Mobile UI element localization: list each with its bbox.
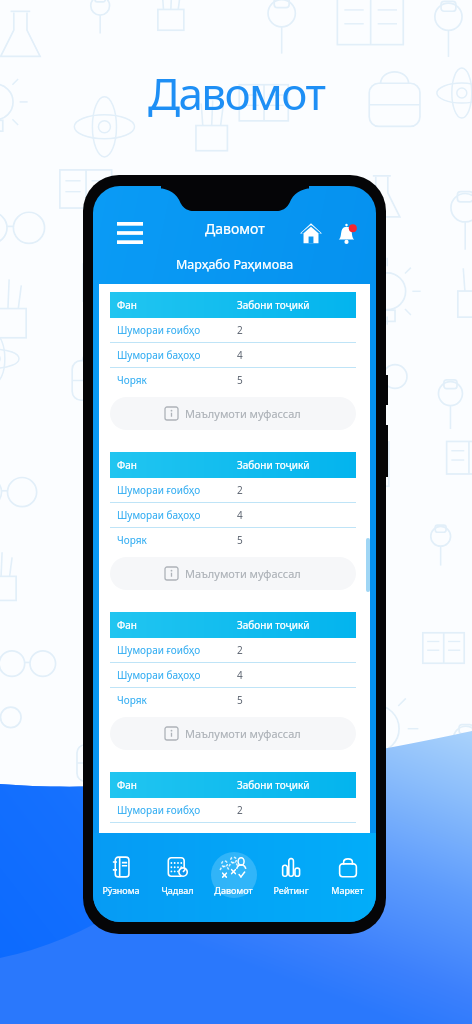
staticText: Фан [117,298,137,312]
staticText: Фан [117,618,137,632]
button[interactable]: Маълумоти муфассал [110,717,356,750]
button[interactable]: Notifications [332,219,360,247]
staticText: 5 [237,373,243,387]
staticText: 2 [237,323,243,337]
staticText: Маълумоти муфассал [185,566,301,581]
staticText: Давомот [205,219,265,238]
button[interactable]: Давомот [205,833,262,922]
staticText: Забони тоҷикӣ [237,778,310,792]
staticText: Шумораи ғоибҳо [117,483,201,497]
staticText: 5 [237,693,243,707]
staticText: 5 [237,533,243,547]
staticText: 4 [237,508,243,522]
staticText: Забони тоҷикӣ [237,458,310,472]
staticText: 2 [237,483,243,497]
staticText: Ҷадвал [161,884,194,896]
staticText: Давомот [148,63,325,123]
staticText: Забони тоҷикӣ [237,298,310,312]
staticText: Маркет [331,884,364,896]
button[interactable]: Рӯзнома [93,833,149,922]
button[interactable]: Маркет [319,833,376,922]
button[interactable]: Home [297,219,325,247]
button[interactable]: Маълумоти муфассал [110,557,356,590]
staticText: 2 [237,643,243,657]
staticText: Чоряк [117,373,147,387]
staticText: Фан [117,778,137,792]
button[interactable]: Маълумоти муфассал [110,397,356,430]
staticText: Давомот [214,884,253,896]
staticText: 4 [237,348,243,362]
button[interactable]: Open menu [113,216,147,250]
staticText: 4 [237,668,243,682]
staticText: Шумораи ғоибҳо [117,643,201,657]
staticText: Забони тоҷикӣ [237,618,310,632]
staticText: Шумораи баҳоҳо [117,508,201,522]
staticText: Рӯзнома [102,884,140,896]
staticText: Чоряк [117,693,147,707]
staticText: Шумораи баҳоҳо [117,668,201,682]
staticText: Рейтинг [273,884,309,896]
button[interactable]: Рейтинг [262,833,319,922]
staticText: 2 [237,803,243,817]
staticText: Шумораи баҳоҳо [117,348,201,362]
button[interactable]: Ҷадвал [149,833,205,922]
staticText: Чоряк [117,533,147,547]
staticText: Шумораи ғоибҳо [117,323,201,337]
staticText: Маълумоти муфассал [185,406,301,421]
staticText: Фан [117,458,137,472]
staticText: Маълумоти муфассал [185,726,301,741]
staticText: Марҳабо Раҳимова [176,256,294,273]
staticText: Шумораи ғоибҳо [117,803,201,817]
